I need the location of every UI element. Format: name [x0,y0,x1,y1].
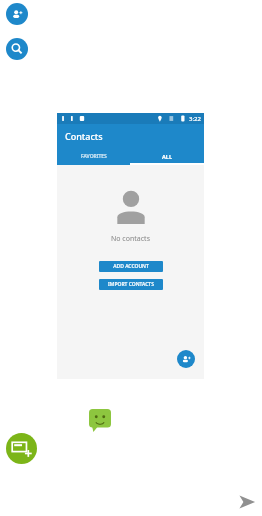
staticText: IMPORT CONTACTS [108,281,154,288]
staticText: ADD ACCOUNT [113,263,149,270]
staticText: FAVORITES [81,153,107,160]
staticText: No contacts [111,234,150,244]
staticText: 3:22 [189,115,201,123]
button[interactable]: FAVORITES [57,148,130,165]
button[interactable]: Add contact [177,350,195,368]
button[interactable]: 3:22 [57,113,204,379]
button[interactable]: Search [6,38,28,60]
button[interactable]: ADD ACCOUNT [99,261,163,272]
button[interactable]: IMPORT CONTACTS [99,279,163,290]
button[interactable]: Add person [6,3,28,25]
button[interactable]: Messages [89,409,111,432]
staticText: Contacts [65,130,103,142]
button[interactable]: Send [238,494,256,510]
button[interactable]: New note [6,433,37,464]
button[interactable]: ALL [130,148,204,165]
staticText: ALL [162,153,172,160]
